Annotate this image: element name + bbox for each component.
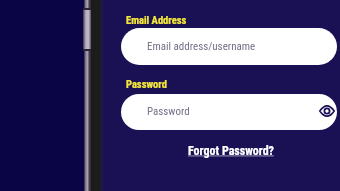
staticText: Email Address — [126, 14, 187, 26]
button[interactable]: Forgot Password? — [188, 144, 274, 158]
button[interactable] — [318, 102, 336, 120]
staticText: Email address/username — [147, 40, 256, 53]
staticText: Password — [147, 105, 190, 118]
staticText: Password — [126, 78, 167, 90]
button[interactable]: Password — [121, 94, 337, 130]
button[interactable]: Email address/username — [121, 28, 337, 65]
